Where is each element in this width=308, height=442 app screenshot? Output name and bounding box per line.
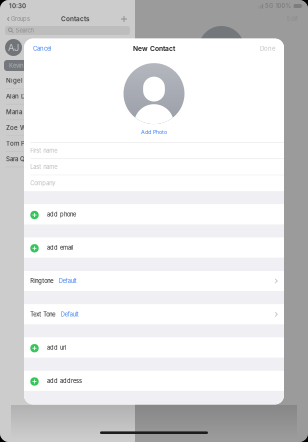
button[interactable]: Add Photo — [137, 128, 171, 136]
staticText: Contacts — [61, 15, 90, 23]
button[interactable]: add url — [24, 338, 284, 358]
staticText: Add Photo — [141, 129, 167, 135]
staticText: Last name — [30, 163, 57, 170]
staticText: First name — [30, 147, 57, 154]
staticText: Text Tone — [30, 311, 55, 318]
button[interactable]: Text Tone — [24, 304, 284, 324]
staticText: 10:30 — [9, 2, 26, 10]
button[interactable]: Add contact — [118, 13, 130, 25]
button[interactable]: Nigel Barrett — [0, 73, 135, 89]
staticText: Nigel Barrett — [6, 77, 44, 84]
staticText: Company — [30, 180, 55, 187]
button[interactable]: Groups — [4, 13, 33, 24]
staticText: Kevin Ashton — [9, 62, 47, 69]
button[interactable]: AJ — [0, 38, 135, 57]
staticText: Done — [260, 45, 275, 52]
button[interactable]: Tom Price — [0, 136, 135, 151]
staticText: add address — [47, 377, 82, 384]
staticText: Alan Davies — [6, 93, 41, 100]
button[interactable]: Company — [24, 175, 284, 191]
button[interactable]: add email — [24, 238, 284, 258]
button[interactable]: First name — [24, 143, 284, 158]
staticText: Default — [59, 277, 77, 284]
button[interactable]: Ringtone — [24, 271, 284, 291]
staticText: 100% — [276, 3, 292, 9]
staticText: Ringtone — [30, 277, 53, 284]
staticText: Tom Price — [6, 140, 37, 147]
staticText: 5G — [265, 3, 273, 9]
staticText: Cancel — [33, 45, 51, 52]
staticText: Zoe Winters — [6, 124, 43, 131]
button[interactable]: add address — [24, 371, 284, 391]
button[interactable]: Sara Quinn — [0, 151, 135, 167]
staticText: Sara Quinn — [6, 155, 39, 163]
button[interactable]: Cancel — [30, 42, 54, 55]
button[interactable]: Maria Lopez — [0, 104, 135, 120]
button[interactable]: Zoe Winters — [0, 120, 135, 136]
button[interactable]: Done — [257, 42, 278, 55]
staticText: add url — [47, 344, 66, 351]
staticText: Edit — [287, 15, 298, 22]
staticText: Default — [61, 311, 79, 318]
staticText: AJ — [8, 42, 19, 53]
staticText: add email — [47, 244, 73, 251]
staticText: add phone — [47, 211, 76, 218]
button[interactable]: Alan Davies — [0, 89, 135, 104]
staticText: Maria Lopez — [6, 108, 42, 116]
button[interactable]: Kevin Ashton — [0, 60, 135, 71]
button[interactable]: Last name — [24, 159, 284, 175]
staticText: Search — [15, 27, 33, 34]
button[interactable]: add phone — [24, 204, 284, 224]
staticText: New Contact — [133, 45, 175, 53]
staticText: Groups — [11, 15, 30, 22]
